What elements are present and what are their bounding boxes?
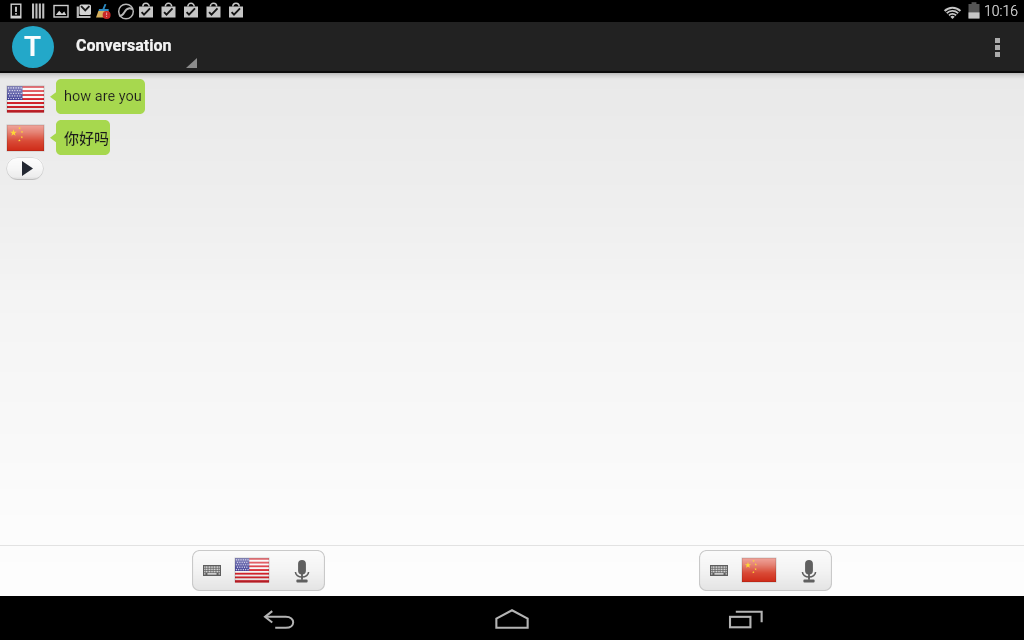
button[interactable]: More options bbox=[970, 22, 1024, 73]
button[interactable]: App icon bbox=[12, 26, 54, 68]
button[interactable]: Back bbox=[220, 596, 340, 640]
button[interactable]: 你好吗 bbox=[50, 120, 110, 155]
staticText: 你好吗 bbox=[64, 127, 110, 149]
button[interactable]: English input bbox=[192, 550, 325, 591]
staticText: T bbox=[24, 30, 42, 63]
staticText: 10:16 bbox=[984, 3, 1019, 19]
button[interactable]: Play bbox=[6, 157, 44, 180]
staticText: how are you bbox=[64, 88, 142, 105]
button[interactable]: Recent apps bbox=[686, 596, 806, 640]
button[interactable]: Chinese input bbox=[699, 550, 832, 591]
staticText: Conversation bbox=[76, 36, 172, 55]
button[interactable]: Home bbox=[452, 596, 572, 640]
button[interactable]: how are you bbox=[50, 79, 145, 114]
